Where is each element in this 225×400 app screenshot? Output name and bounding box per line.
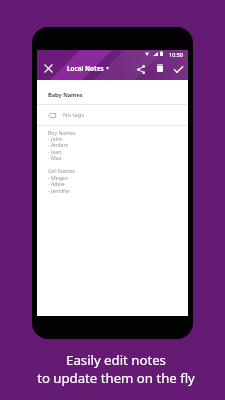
- staticText: - Max: [48, 154, 62, 161]
- staticText: No tags: [63, 111, 85, 119]
- button[interactable]: Done: [169, 60, 187, 78]
- button[interactable]: No tags: [48, 105, 188, 125]
- staticText: - John: [48, 135, 62, 142]
- staticText: Baby Names: [48, 91, 83, 99]
- staticText: Easily edit notes: [66, 351, 166, 369]
- staticText: - Anders: [48, 141, 69, 148]
- staticText: Girl Names: [48, 167, 76, 174]
- button[interactable]: Share: [132, 60, 150, 78]
- button[interactable]: Close: [39, 59, 57, 77]
- staticText: Local Notes: [67, 64, 104, 73]
- button[interactable]: Delete: [151, 59, 169, 77]
- staticText: - Jennifer: [48, 187, 70, 194]
- staticText: Boy Names: [48, 129, 76, 136]
- staticText: - Jean: [48, 148, 62, 155]
- staticText: - Megan: [48, 174, 68, 181]
- staticText: to update them on the fly: [37, 369, 195, 387]
- staticText: - Adele: [48, 180, 65, 187]
- staticText: 10:50: [169, 51, 183, 58]
- button[interactable]: Local Notes: [67, 60, 109, 76]
